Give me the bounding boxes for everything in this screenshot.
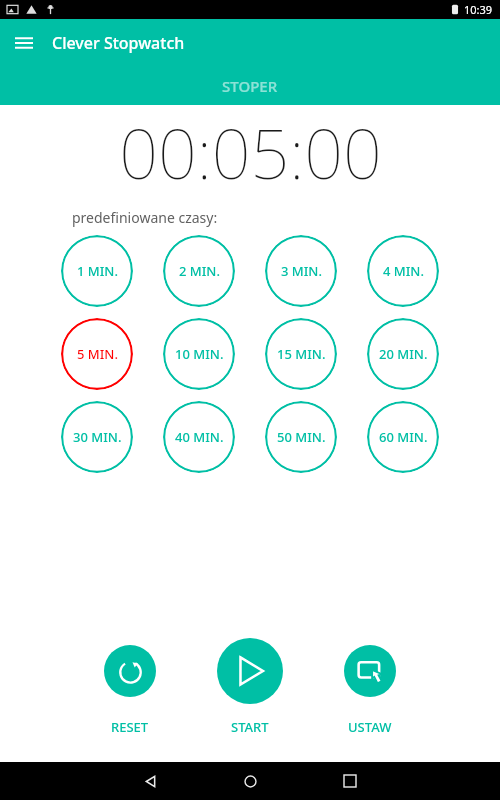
staticText: START <box>231 718 269 736</box>
staticText: predefiniowane czasy: <box>72 208 218 227</box>
button[interactable]: STOPER <box>0 67 500 105</box>
staticText: 1 MIN. <box>77 262 118 280</box>
button[interactable]: Home <box>222 762 278 800</box>
button[interactable]: 5 MIN. <box>61 318 133 390</box>
staticText: STOPER <box>222 76 278 96</box>
staticText: 10:39 <box>464 2 493 17</box>
staticText: 5 MIN. <box>77 345 118 363</box>
staticText: Clever Stopwatch <box>52 32 185 54</box>
button[interactable]: 60 MIN. <box>367 401 439 473</box>
staticText: 50 MIN. <box>277 428 326 446</box>
button[interactable]: 10 MIN. <box>163 318 235 390</box>
staticText: 2 MIN. <box>179 262 220 280</box>
button[interactable]: 2 MIN. <box>163 235 235 307</box>
button[interactable]: Open navigation menu <box>4 23 44 63</box>
button[interactable]: Back <box>122 762 178 800</box>
staticText: 10 MIN. <box>175 345 224 363</box>
staticText: 40 MIN. <box>175 428 224 446</box>
button[interactable]: 50 MIN. <box>265 401 337 473</box>
staticText: RESET <box>111 718 149 736</box>
button[interactable]: 15 MIN. <box>265 318 337 390</box>
staticText: 30 MIN. <box>73 428 122 446</box>
staticText: 00:05:00 <box>119 106 382 186</box>
button[interactable]: Start timer <box>217 638 283 704</box>
button[interactable]: 30 MIN. <box>61 401 133 473</box>
button[interactable]: Reset timer <box>104 645 156 697</box>
staticText: 15 MIN. <box>277 345 326 363</box>
button[interactable]: Recent apps <box>322 762 378 800</box>
button[interactable]: Set custom time <box>344 645 396 697</box>
staticText: 60 MIN. <box>379 428 428 446</box>
button[interactable]: 20 MIN. <box>367 318 439 390</box>
button[interactable]: 4 MIN. <box>367 235 439 307</box>
staticText: USTAW <box>348 718 392 736</box>
staticText: 3 MIN. <box>281 262 322 280</box>
staticText: 4 MIN. <box>383 262 424 280</box>
button[interactable]: 3 MIN. <box>265 235 337 307</box>
staticText: 20 MIN. <box>379 345 428 363</box>
button[interactable]: 1 MIN. <box>61 235 133 307</box>
button[interactable]: 40 MIN. <box>163 401 235 473</box>
